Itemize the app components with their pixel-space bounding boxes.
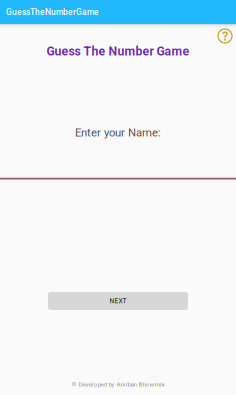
staticText: Enter your Name: <box>75 126 161 139</box>
staticText: © Developed by Anirban Bhowmik <box>71 381 164 388</box>
staticText: GuessTheNumberGame <box>6 7 99 17</box>
button[interactable]: NEXT <box>48 292 188 310</box>
button[interactable]: Enter your Name <box>0 126 236 180</box>
staticText: NEXT <box>109 297 126 305</box>
staticText: Guess The Number Game <box>46 44 189 58</box>
button[interactable]: Help <box>215 26 235 46</box>
staticText: ? <box>222 28 228 43</box>
